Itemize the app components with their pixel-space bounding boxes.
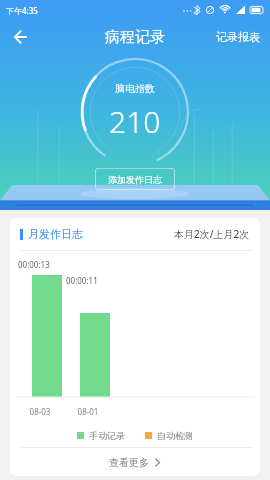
button[interactable]: Back (0, 20, 38, 54)
staticText: 210 (109, 101, 161, 142)
button[interactable]: 查看更多 (10, 448, 260, 476)
staticText: 本月2次/上月2次 (174, 227, 250, 241)
staticText: 病程记录 (105, 28, 165, 47)
staticText: 08-03 (23, 406, 57, 417)
button[interactable]: 添加发作日志 (95, 168, 175, 190)
staticText: 手动记录 (89, 430, 125, 441)
staticText: 查看更多 (109, 456, 149, 469)
staticText: 08-01 (71, 406, 105, 417)
button[interactable]: 记录报表 (206, 24, 270, 50)
staticText: 下午4:35 (6, 5, 38, 16)
staticText: 00:00:11 (66, 275, 98, 286)
staticText: 自动检测 (157, 430, 193, 441)
staticText: 添加发作日志 (108, 174, 162, 185)
staticText: 记录报表 (216, 30, 260, 44)
staticText: 月发作日志 (28, 227, 83, 241)
staticText: 00:00:13 (18, 259, 50, 270)
staticText: 脑电指数 (115, 82, 155, 95)
